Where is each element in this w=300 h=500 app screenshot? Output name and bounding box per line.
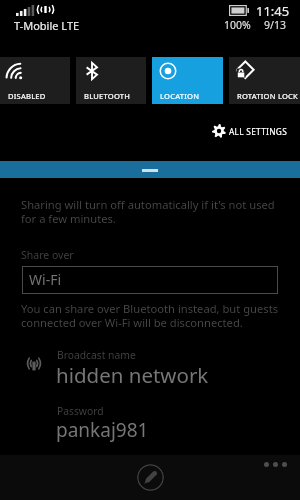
button[interactable]: BLUETOOTH <box>76 57 146 104</box>
staticText: 100% <box>224 18 251 32</box>
staticText: Wi-Fi <box>29 270 62 289</box>
staticText: LOCATION <box>160 91 200 101</box>
button[interactable]: LOCATION <box>152 57 223 104</box>
staticText: 11:45 <box>256 2 290 20</box>
staticText: Sharing will turn off automatically if i… <box>21 197 275 226</box>
staticText: BLUETOOTH <box>84 91 131 101</box>
button[interactable]: Wi-Fi <box>22 266 278 294</box>
button[interactable]: ALL SETTINGS <box>0 118 300 144</box>
staticText: Password <box>57 404 104 418</box>
staticText: You can share over Bluetooth instead, bu… <box>21 301 279 330</box>
staticText: T-Mobile LTE <box>14 18 80 33</box>
staticText: ALL SETTINGS <box>229 126 288 137</box>
staticText: hidden network <box>56 361 209 389</box>
button[interactable]: More options <box>258 456 293 473</box>
staticText: 9/13 <box>264 18 286 32</box>
staticText: ROTATION LOCK <box>237 91 299 101</box>
staticText: Broadcast name <box>57 348 136 362</box>
button[interactable]: ROTATION LOCK <box>229 57 300 104</box>
staticText: pankaj981 <box>56 417 149 443</box>
button[interactable]: Edit <box>137 464 164 491</box>
button[interactable]: DISABLED <box>0 57 70 104</box>
staticText: Share over <box>21 248 74 262</box>
staticText: DISABLED <box>8 91 46 101</box>
